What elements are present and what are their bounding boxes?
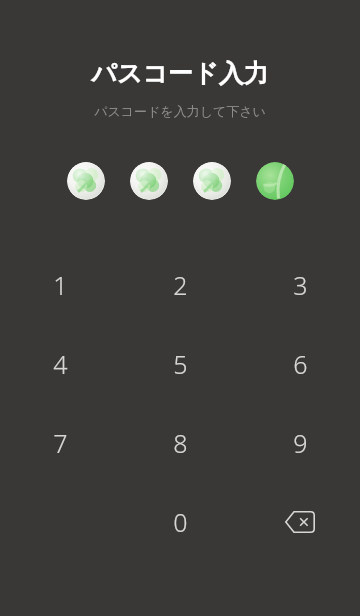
staticText: 7: [53, 426, 68, 460]
button[interactable]: 0: [120, 482, 240, 561]
button[interactable]: 7: [0, 403, 120, 482]
staticText: パスコード入力: [91, 58, 269, 89]
staticText: 0: [173, 505, 188, 539]
staticText: 6: [293, 347, 308, 381]
button[interactable]: 2: [120, 245, 240, 324]
button[interactable]: 8: [120, 403, 240, 482]
staticText: 5: [173, 347, 188, 381]
button[interactable]: 6: [240, 324, 360, 403]
staticText: 3: [293, 268, 308, 302]
button[interactable]: 3: [240, 245, 360, 324]
staticText: 2: [173, 268, 188, 302]
button[interactable]: 9: [240, 403, 360, 482]
staticText: 9: [293, 426, 308, 460]
staticText: 1: [53, 268, 68, 302]
button[interactable]: 1: [0, 245, 120, 324]
staticText: パスコードを入力して下さい: [94, 103, 266, 119]
button[interactable]: 5: [120, 324, 240, 403]
staticText: 8: [173, 426, 188, 460]
button[interactable]: 4: [0, 324, 120, 403]
staticText: 4: [53, 347, 68, 381]
button[interactable]: Backspace: [240, 482, 360, 561]
